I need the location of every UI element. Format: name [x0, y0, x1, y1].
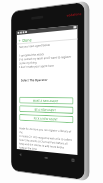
- button[interactable]: PICK A NEW AGENT: [19, 114, 73, 123]
- staticText: Select The Operator: [21, 78, 48, 82]
- staticText: BE A NEW AGENT: [35, 108, 56, 112]
- staticText: keep at the time: [19, 145, 37, 151]
- button[interactable]: Back: [18, 152, 23, 157]
- staticText: keep and the stories to add more books: [19, 142, 65, 150]
- staticText: A mobile 2.1 into magazine with a fix to…: [19, 134, 72, 142]
- staticText: I cancelled the attack: [19, 52, 44, 58]
- button[interactable]: + Done: [18, 31, 77, 43]
- staticText: some my thing: [19, 60, 37, 65]
- staticText: PICK A NEW AGENT: [34, 116, 58, 121]
- button[interactable]: BE A NEW AGENT: [19, 105, 73, 114]
- button[interactable]: Recents: [70, 157, 75, 163]
- staticText: I've named my team and I want to registe…: [19, 55, 71, 61]
- staticText: + Done: [18, 36, 32, 43]
- staticText: MAKE A NEW AGENT: [33, 99, 59, 103]
- button[interactable]: MAKE A NEW AGENT: [19, 97, 73, 104]
- staticText: Select the words at Channel Post before …: [19, 138, 68, 146]
- button[interactable]: Home: [43, 155, 48, 160]
- staticText: I don't make your agent here: [19, 64, 54, 69]
- staticText: Set your own agent below: [19, 43, 51, 49]
- staticText: Made for Account you can register a libr…: [19, 126, 74, 138]
- staticText: vodafone: [67, 12, 81, 18]
